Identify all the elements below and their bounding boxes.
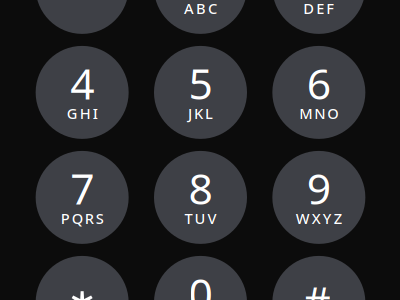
button[interactable]: 6 [272,46,365,139]
button[interactable]: 2 [154,0,247,34]
staticText: 9 [307,160,331,216]
button[interactable]: 5 [154,46,247,139]
button[interactable]: 8 [154,151,247,244]
staticText: 3 [307,0,331,6]
button[interactable]: 9 [272,151,365,244]
staticText: A B C [184,0,217,18]
staticText: 4 [70,55,94,111]
staticText: 2 [188,0,212,6]
staticText: W X Y Z [296,209,342,228]
staticText: M N O [299,104,338,123]
staticText: # [303,273,331,300]
staticText: 7 [70,160,94,216]
staticText: T U V [184,209,216,228]
staticText: D E F [303,0,334,18]
staticText: 8 [188,160,212,216]
staticText: J K L [188,104,213,123]
button[interactable]: 7 [36,151,129,244]
button[interactable]: 0 [154,256,247,300]
button[interactable]: 1 [36,0,129,34]
staticText: 5 [188,55,212,111]
button[interactable] [36,256,129,300]
button[interactable]: 4 [36,46,129,139]
staticText: G H I [67,104,98,123]
button[interactable]: # [272,256,365,300]
staticText: 0 [188,265,212,300]
staticText: 6 [307,55,331,111]
staticText: P Q R S [61,209,104,228]
button[interactable]: 3 [272,0,365,34]
